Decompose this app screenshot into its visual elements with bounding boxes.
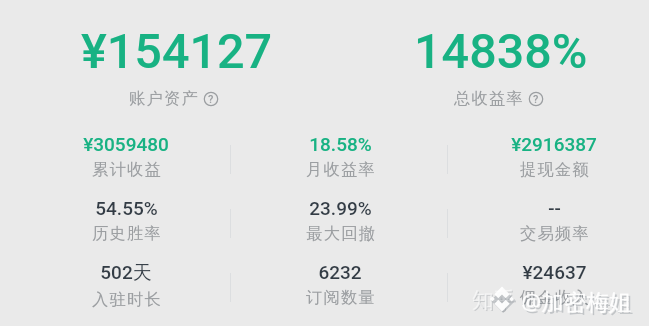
button[interactable]: -- [447,197,649,244]
staticText: 23.99% [309,197,372,219]
staticText: 知乎 [473,288,517,316]
staticText: 累计收益 [92,159,162,180]
button[interactable]: 54.55% [19,197,233,244]
staticText: 总收益率 [454,88,524,109]
button[interactable]: 502天 [19,261,233,310]
staticText: 6232 [318,261,362,283]
button[interactable]: 23.99% [233,197,447,244]
button[interactable]: 18.58% [233,133,447,180]
staticText: 知乎 [472,287,516,315]
staticText: 月收益率 [306,159,376,180]
staticText: 提现金额 [520,159,590,180]
staticText: ¥154127 [81,23,273,80]
staticText: @加密梅姐 [521,286,632,317]
button[interactable]: ¥3059480 [19,133,233,180]
button[interactable]: ¥2916387 [447,133,649,180]
staticText: 14838% [414,23,588,80]
staticText: 502天 [100,261,152,285]
staticText: 账户资产 [129,88,199,109]
staticText: 18.58% [309,133,372,155]
staticText: 佣金收入 [520,287,590,308]
staticText: 最大回撤 [306,223,376,244]
button[interactable]: 6232 [233,261,447,308]
staticText: 交易频率 [520,223,590,244]
button[interactable]: ¥154127 [13,23,340,109]
staticText: ? [533,93,539,106]
staticText: 入驻时长 [92,289,162,310]
staticText: 历史胜率 [92,223,162,244]
staticText: ¥24637 [522,261,587,283]
button[interactable]: Help [203,91,219,107]
button[interactable]: 14838% [340,23,649,109]
button[interactable]: ¥24637 [447,261,649,308]
staticText: ? [208,93,214,106]
staticText: -- [548,197,561,219]
staticText: 54.55% [95,197,158,219]
staticText: ¥3059480 [83,133,169,155]
staticText: @加密梅姐 [523,288,634,319]
button[interactable]: Help [528,91,544,107]
staticText: ¥2916387 [511,133,597,155]
staticText: 订阅数量 [306,287,376,308]
